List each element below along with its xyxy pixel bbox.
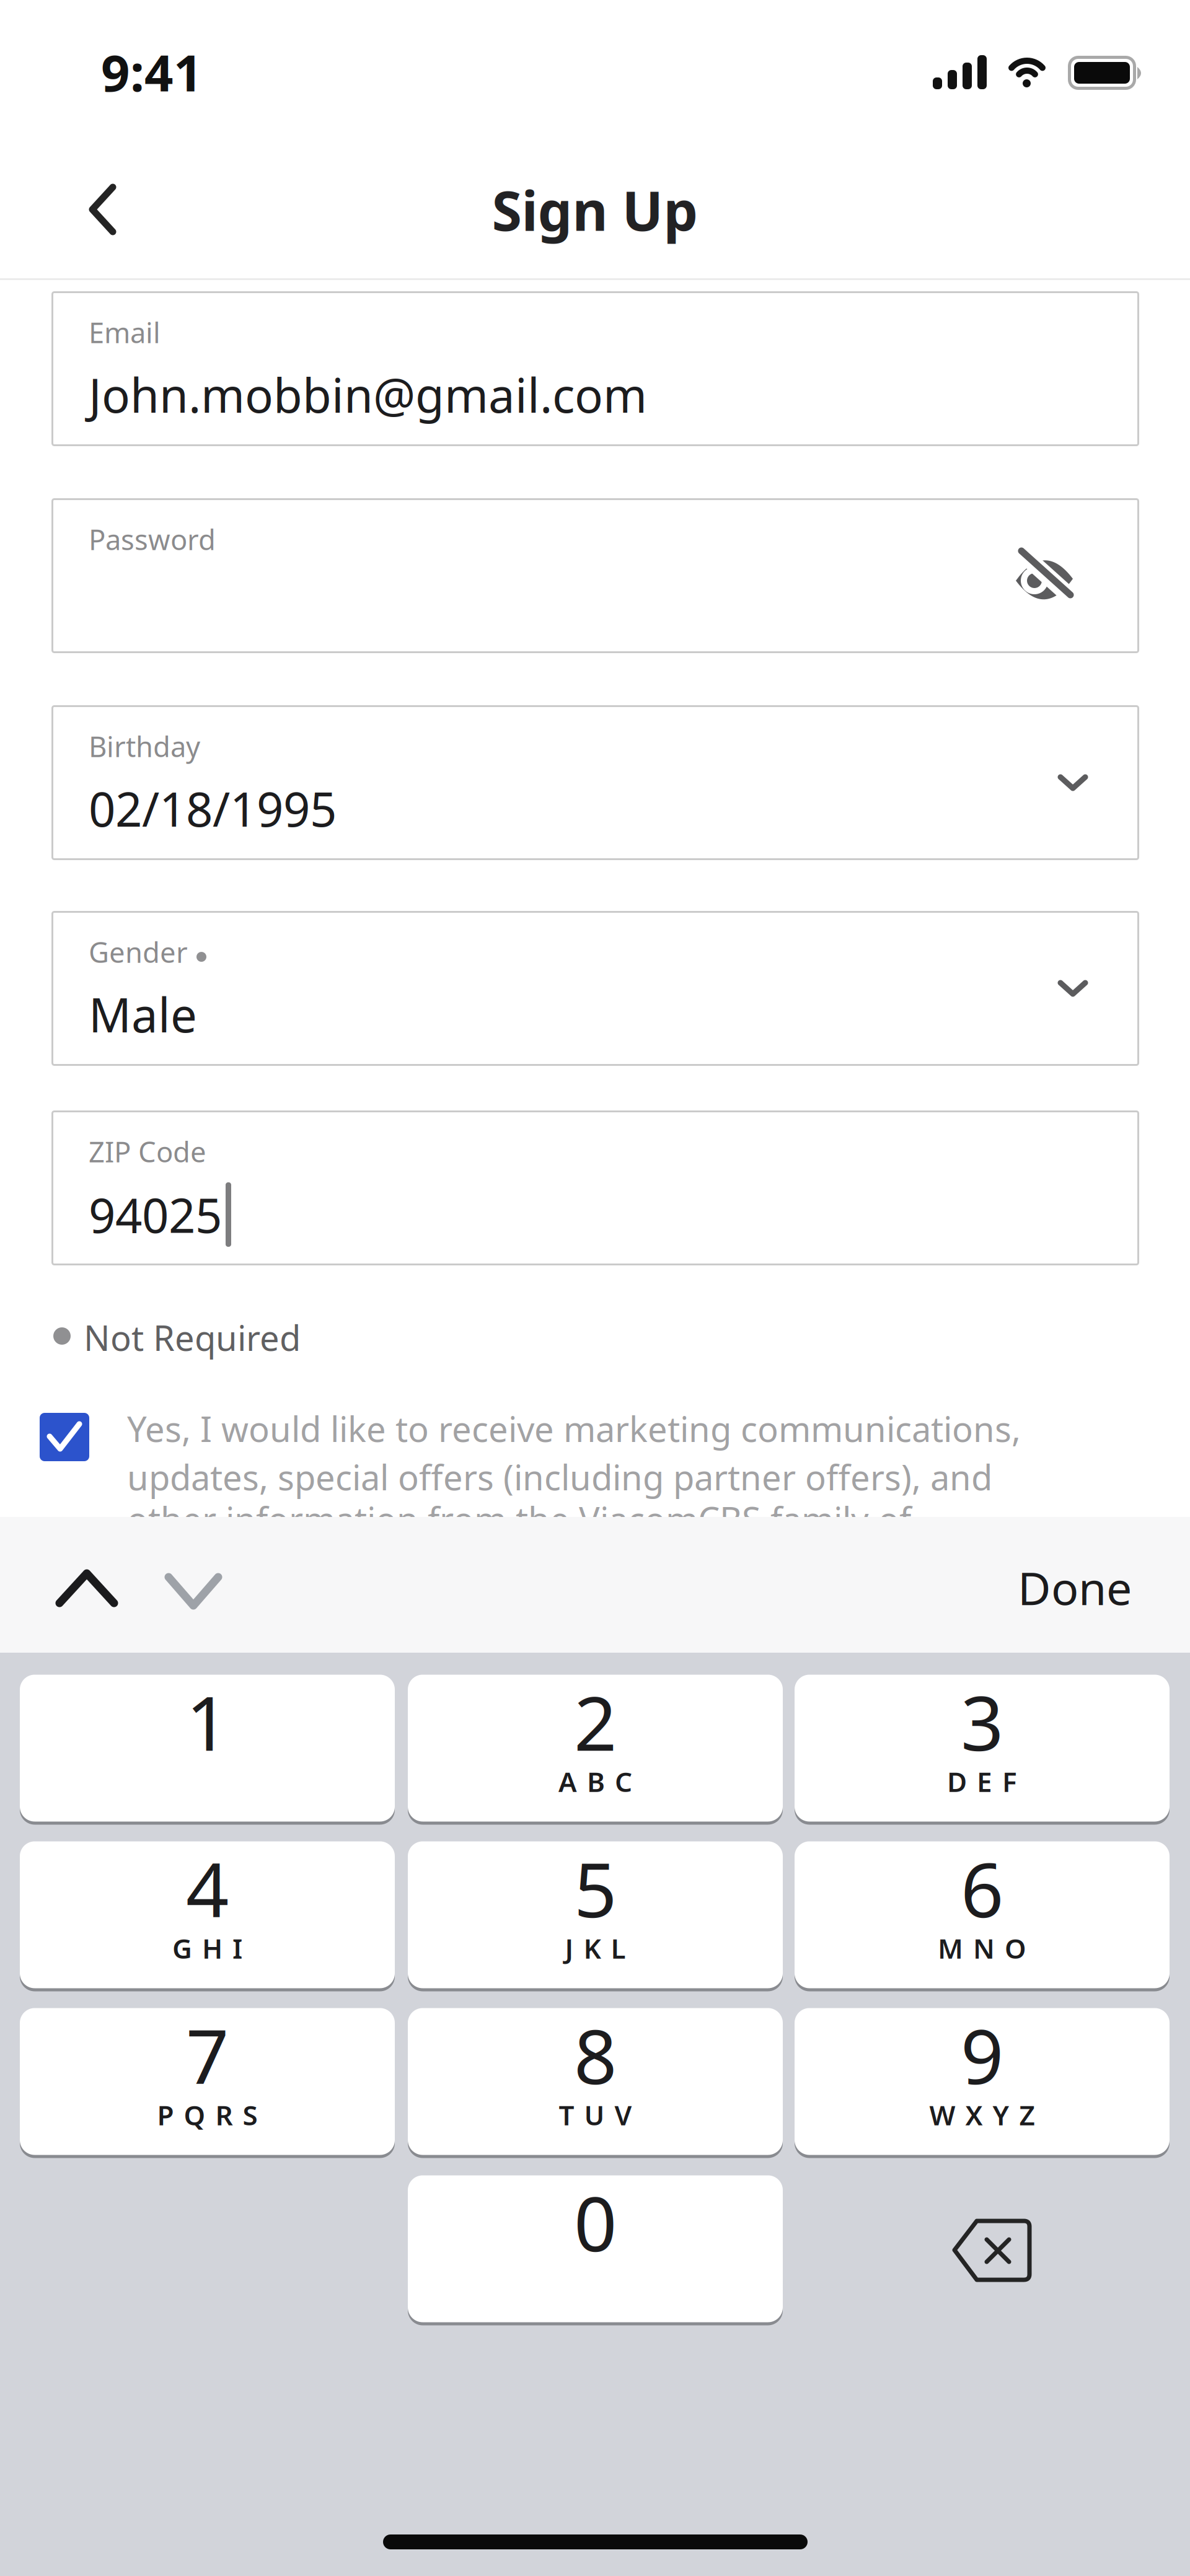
staticText: 0 — [574, 2172, 617, 2272]
button[interactable]: Gender — [51, 911, 1139, 1066]
staticText: 5 — [574, 1838, 617, 1938]
button[interactable]: Delete — [930, 2196, 1054, 2305]
staticText: 02/18/1995 — [89, 777, 337, 840]
button[interactable]: 2 — [408, 1673, 783, 1823]
button[interactable]: 0 — [408, 2174, 783, 2324]
staticText: 2 — [574, 1672, 617, 1771]
button[interactable]: Previous field — [48, 1562, 125, 1614]
staticText: Email — [89, 314, 161, 351]
staticText: 8 — [574, 2005, 617, 2105]
staticText: Gender — [89, 933, 188, 971]
staticText: TUV — [559, 2097, 632, 2133]
staticText: PQRS — [157, 2097, 258, 2133]
button[interactable]: Birthday — [51, 705, 1139, 860]
button[interactable]: Back — [74, 169, 131, 250]
staticText: 4 — [186, 1838, 229, 1938]
button[interactable]: ZIP Code — [51, 1110, 1139, 1265]
staticText: Yes, I would like to receive marketing c… — [127, 1405, 1021, 1452]
staticText: 3 — [961, 1672, 1003, 1771]
button[interactable]: 7 — [20, 2007, 395, 2156]
button[interactable]: Show password — [1003, 538, 1085, 620]
staticText: Male — [89, 983, 197, 1045]
staticText: 9 — [961, 2005, 1003, 2105]
staticText: 9:41 — [101, 38, 203, 105]
button[interactable]: 1 — [20, 1673, 395, 1823]
button[interactable]: Next field — [157, 1566, 229, 1617]
staticText: MNO — [938, 1930, 1026, 1966]
button[interactable]: 6 — [795, 1840, 1170, 1990]
staticText: 7 — [186, 2005, 229, 2105]
staticText: John.mobbin@gmail.com — [89, 363, 647, 426]
staticText: Sign Up — [492, 174, 698, 246]
staticText: Password — [89, 521, 216, 558]
staticText: JKL — [565, 1930, 626, 1966]
staticText: updates, special offers (including partn… — [127, 1454, 992, 1500]
staticText: other information from the ViacomCBS fam… — [127, 1496, 911, 1542]
button[interactable]: Receive marketing communications — [40, 1413, 89, 1461]
staticText: Not Required — [84, 1314, 301, 1360]
staticText: DEF — [947, 1763, 1017, 1799]
staticText: ZIP Code — [89, 1133, 206, 1170]
staticText: 94025 — [89, 1183, 222, 1246]
button[interactable]: 3 — [795, 1673, 1170, 1823]
button[interactable]: 9 — [795, 2007, 1170, 2156]
staticText: ABC — [558, 1763, 632, 1799]
staticText: GHI — [172, 1930, 242, 1966]
staticText: Done — [1018, 1557, 1132, 1618]
button[interactable]: Email — [51, 291, 1139, 446]
staticText: 6 — [961, 1838, 1003, 1938]
button[interactable]: Done — [1005, 1557, 1144, 1618]
button[interactable]: 5 — [408, 1840, 783, 1990]
staticText: WXYZ — [929, 2097, 1035, 2133]
staticText: 1 — [186, 1672, 229, 1771]
button[interactable]: Password — [51, 498, 1139, 653]
staticText: Birthday — [89, 728, 200, 765]
button[interactable]: 4 — [20, 1840, 395, 1990]
button[interactable]: 8 — [408, 2007, 783, 2156]
